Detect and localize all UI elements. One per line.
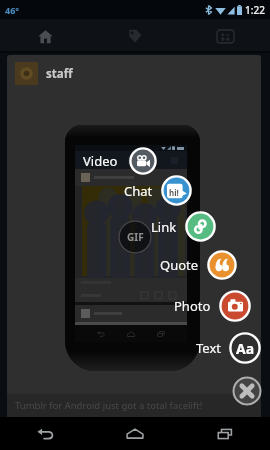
staticText: Aa — [236, 339, 255, 358]
staticText: GIF — [127, 230, 144, 244]
button[interactable]: staff — [15, 62, 73, 85]
button[interactable]: Chat — [73, 175, 192, 206]
button[interactable]: Explore — [90, 19, 180, 53]
staticText: Text — [196, 339, 221, 357]
button[interactable]: Dashboard — [0, 19, 90, 53]
staticText: Video — [83, 152, 118, 170]
button[interactable]: Account — [180, 19, 270, 53]
staticText: hi! — [169, 187, 179, 198]
button[interactable]: Home — [90, 417, 180, 450]
staticText: 1:22 — [245, 3, 265, 17]
button[interactable]: Link — [97, 211, 216, 242]
staticText: Tumblr for Android just got a total face… — [15, 399, 203, 412]
button[interactable]: Photo — [131, 290, 251, 322]
button[interactable]: Recent apps — [180, 417, 270, 450]
staticText: Link — [151, 218, 177, 236]
button[interactable]: Text — [141, 332, 261, 364]
button[interactable]: Quote — [119, 250, 237, 280]
staticText: Quote — [160, 256, 199, 274]
staticText: staff — [46, 66, 73, 82]
button[interactable]: Tumblr for Android just got a total face… — [7, 394, 261, 417]
button[interactable]: Video — [38, 147, 157, 175]
staticText: Chat — [124, 182, 153, 200]
button[interactable]: Close menu — [232, 376, 262, 406]
staticText: Photo — [174, 297, 211, 315]
staticText: 46° — [5, 4, 20, 16]
button[interactable]: Back — [0, 417, 90, 450]
